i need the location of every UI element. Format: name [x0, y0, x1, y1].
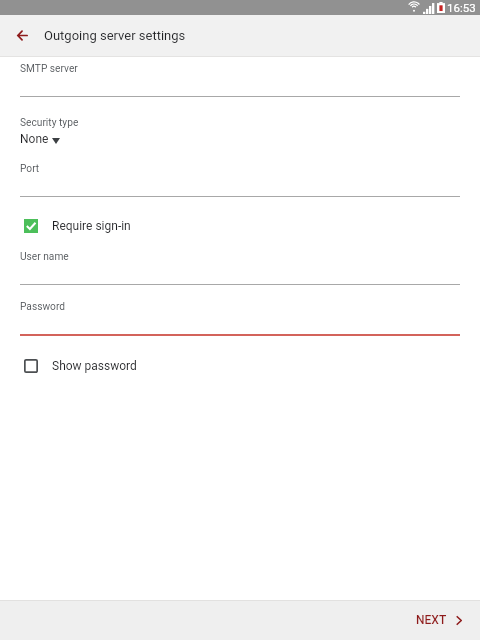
button[interactable]: NEXT — [400, 606, 480, 636]
staticText: None — [20, 132, 49, 146]
staticText: Require sign-in — [52, 219, 131, 233]
staticText: Password — [20, 301, 65, 313]
button[interactable]: Show password — [0, 353, 480, 379]
staticText: Outgoing server settings — [44, 28, 186, 43]
staticText: Security type — [20, 117, 79, 129]
staticText: NEXT — [416, 613, 447, 627]
staticText: User name — [20, 251, 69, 263]
button[interactable]: Require sign-in — [0, 213, 480, 239]
staticText: 16:53 — [447, 1, 476, 14]
staticText: SMTP server — [20, 63, 78, 75]
button[interactable]: None — [16, 128, 62, 150]
staticText: Port — [20, 163, 40, 175]
staticText: Show password — [52, 359, 137, 373]
button[interactable]: Back — [0, 15, 46, 56]
